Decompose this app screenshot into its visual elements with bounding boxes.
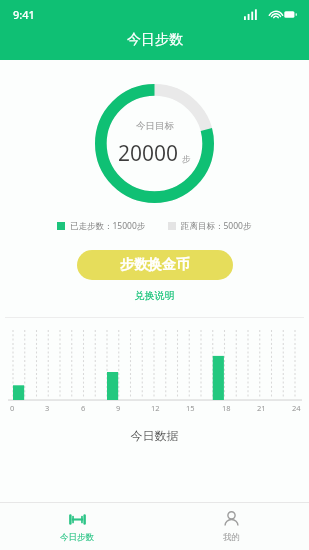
staticText: 今日步数 [127, 31, 183, 49]
other: 今日步数 [68, 510, 87, 529]
staticText: 距离目标：5000步 [181, 220, 252, 232]
staticText: 我的 [223, 532, 240, 543]
button[interactable]: 兑换说明 [0, 289, 309, 302]
staticText: 0 [10, 403, 15, 413]
staticText: 已走步数：15000步 [70, 220, 146, 232]
other: 我的 [222, 510, 241, 529]
staticText: 6 [81, 403, 86, 413]
staticText: 今日目标 [136, 120, 174, 132]
staticText: 今日步数 [60, 532, 94, 543]
staticText: 3 [45, 403, 50, 413]
staticText: 18 [222, 403, 231, 413]
button[interactable]: 今日步数 [0, 503, 154, 550]
staticText: 24 [292, 403, 301, 413]
staticText: 步 [182, 154, 191, 165]
staticText: 15 [186, 403, 195, 413]
staticText: 12 [151, 403, 160, 413]
staticText: 21 [257, 403, 266, 413]
staticText: 9:41 [13, 7, 35, 22]
button[interactable]: 步数换金币 [77, 250, 233, 280]
staticText: 20000 [118, 139, 179, 168]
staticText: 今日数据 [0, 428, 309, 443]
staticText: 步数换金币 [120, 256, 190, 274]
button[interactable]: 我的 [154, 503, 309, 550]
staticText: 9 [116, 403, 121, 413]
